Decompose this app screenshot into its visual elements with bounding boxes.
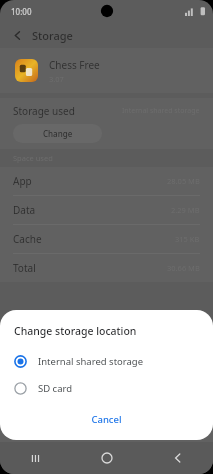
staticText: Cancel bbox=[91, 413, 122, 426]
button[interactable]: Cancel bbox=[79, 409, 134, 430]
staticText: Change bbox=[43, 128, 73, 139]
staticText: Storage used bbox=[13, 104, 75, 118]
button[interactable]: Cache bbox=[0, 225, 213, 254]
staticText: Space used bbox=[13, 153, 53, 163]
button[interactable]: Clear data bbox=[0, 412, 106, 442]
staticText: SD card bbox=[38, 382, 73, 395]
button[interactable]: SD card bbox=[0, 375, 213, 402]
button[interactable]: Change bbox=[13, 124, 102, 143]
staticText: Cache bbox=[13, 232, 42, 246]
button[interactable]: Back bbox=[142, 442, 213, 474]
button[interactable]: Data bbox=[0, 196, 213, 225]
staticText: 10:00 bbox=[11, 6, 32, 17]
button[interactable]: Clear cache bbox=[106, 412, 213, 442]
button[interactable]: Total bbox=[0, 254, 213, 282]
button[interactable]: Back bbox=[9, 27, 25, 43]
staticText: Internal shared storage bbox=[38, 355, 144, 368]
button[interactable]: Recent apps bbox=[0, 442, 71, 474]
button[interactable]: Back bbox=[0, 22, 213, 48]
button[interactable]: Home bbox=[71, 442, 142, 474]
staticText: App bbox=[13, 174, 32, 188]
staticText: Storage bbox=[32, 28, 73, 43]
staticText: Chess Free bbox=[49, 58, 100, 72]
staticText: Change storage location bbox=[14, 324, 137, 338]
button[interactable]: App bbox=[0, 167, 213, 196]
staticText: Data bbox=[13, 203, 36, 217]
button[interactable]: Internal shared storage bbox=[0, 348, 213, 375]
staticText: Total bbox=[13, 261, 36, 275]
